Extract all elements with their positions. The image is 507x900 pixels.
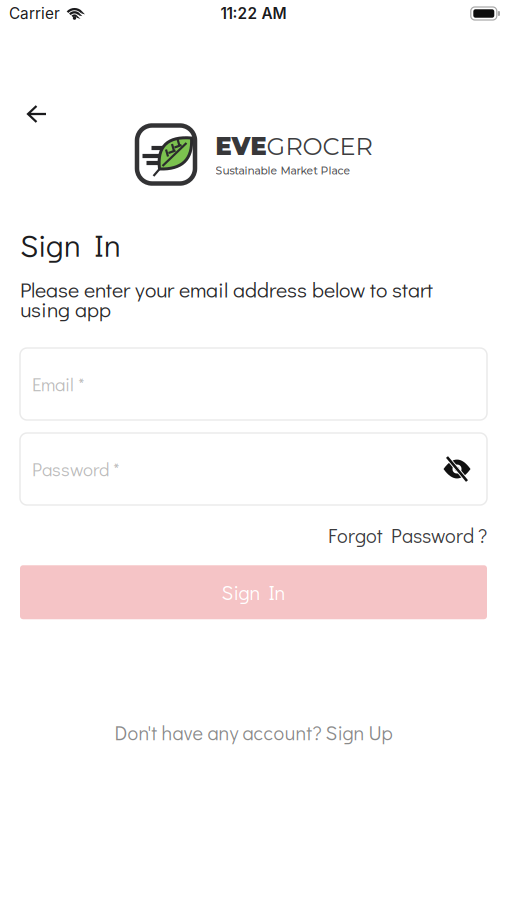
staticText: GROCER bbox=[266, 132, 372, 161]
staticText: EVE bbox=[215, 132, 266, 161]
staticText: Carrier bbox=[9, 4, 60, 23]
button[interactable]: Don't have any account? Sign Up bbox=[114, 719, 392, 745]
staticText: Forgot Password ? bbox=[328, 522, 487, 548]
staticText: Don't have any account? Sign Up bbox=[114, 719, 392, 745]
staticText: Email * bbox=[32, 372, 85, 396]
button[interactable]: Forgot Password ? bbox=[328, 522, 487, 548]
button[interactable]: Back bbox=[28, 106, 46, 122]
staticText: 11:22 AM bbox=[220, 4, 286, 23]
staticText: Please enter your email address below to… bbox=[20, 275, 433, 323]
staticText: Sustainable Market Place bbox=[215, 164, 350, 177]
staticText: Sign In bbox=[20, 224, 121, 265]
staticText: Sign In bbox=[221, 579, 285, 605]
button[interactable]: Show password bbox=[443, 456, 471, 481]
button[interactable]: Sign In bbox=[20, 565, 487, 619]
staticText: Password * bbox=[32, 457, 120, 481]
